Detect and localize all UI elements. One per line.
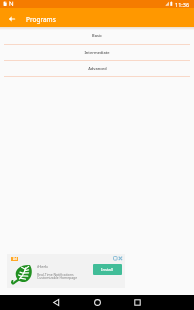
button[interactable]: Basic <box>0 27 194 45</box>
staticText: Ad <box>13 257 17 261</box>
staticText: Programs <box>26 15 56 24</box>
staticText: Customizable Homepage <box>37 275 78 280</box>
staticText: Real-Time Notifications <box>37 272 74 277</box>
button[interactable]: Advanced <box>0 61 194 77</box>
staticText: Basic <box>92 33 102 38</box>
staticText: iHerb <box>37 264 48 270</box>
button[interactable]: Recent apps <box>128 295 147 310</box>
staticText: Install <box>101 267 114 273</box>
button[interactable]: Install <box>93 264 122 275</box>
staticText: Advanced <box>88 66 107 71</box>
staticText: Intermediate <box>84 50 110 55</box>
button[interactable]: Back <box>47 295 66 310</box>
button[interactable]: Home <box>88 295 107 310</box>
button[interactable]: Intermediate <box>0 45 194 61</box>
button[interactable]: Navigate up <box>5 12 18 25</box>
button[interactable]: Ad info <box>113 256 118 261</box>
staticText: 11:36 <box>175 1 190 8</box>
button[interactable]: Close ad <box>118 256 123 261</box>
